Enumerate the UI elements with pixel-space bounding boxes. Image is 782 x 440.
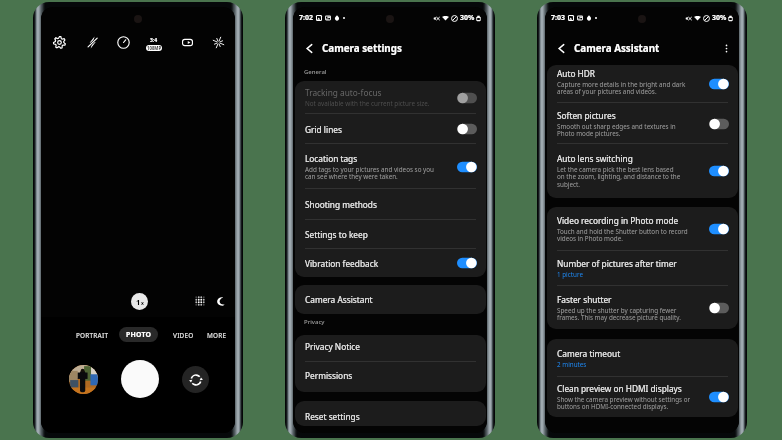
button[interactable]: More options [718, 40, 735, 57]
button[interactable]: Permissions [295, 362, 486, 392]
staticText: 1 [136, 297, 141, 307]
button[interactable]: Filters [212, 36, 225, 49]
button[interactable]: Enabled [709, 223, 729, 235]
staticText: 1 picture [557, 270, 583, 279]
button[interactable]: Vibration feedback [295, 249, 486, 277]
button[interactable]: PHOTO [119, 327, 158, 342]
button[interactable]: Auto lens switching [547, 144, 738, 198]
button[interactable]: Take picture [121, 360, 159, 398]
button[interactable]: Flash off [86, 36, 99, 49]
button[interactable]: Aspect ratio 3 to 4, 108 megapixels [144, 36, 164, 52]
button[interactable]: Tracking auto-focus [295, 81, 486, 114]
button[interactable]: Soften pictures [547, 103, 738, 144]
button[interactable]: Disabled [457, 123, 477, 135]
button[interactable]: Switch camera [182, 366, 209, 393]
staticText: Capture more details in the bright and d… [557, 80, 686, 96]
button[interactable]: Reset settings [295, 401, 486, 426]
button[interactable]: Navigate up [553, 40, 570, 57]
staticText: 2 minutes [557, 360, 587, 369]
staticText: Number of pictures after timer [557, 258, 677, 269]
staticText: 30% [712, 13, 727, 23]
staticText: Touch and hold the Shutter button to rec… [557, 227, 688, 243]
staticText: 30% [460, 13, 475, 23]
button[interactable]: Timer [117, 36, 130, 49]
staticText: Settings to keep [305, 229, 368, 240]
button[interactable]: Video recording in Photo mode [547, 207, 738, 251]
button[interactable]: Grid lines [295, 114, 486, 144]
staticText: Location tags [305, 153, 358, 164]
staticText: Clean preview on HDMI displays [557, 383, 682, 394]
button[interactable]: Enabled [709, 391, 729, 403]
button[interactable]: Disabled [457, 92, 477, 104]
button[interactable]: Camera settings [53, 36, 66, 49]
button[interactable]: Navigate up [301, 40, 318, 57]
button[interactable]: Enabled [457, 161, 477, 173]
staticText: Permissions [305, 370, 353, 381]
button[interactable]: Settings to keep [295, 220, 486, 249]
button[interactable]: Shooting methods [295, 189, 486, 220]
button[interactable]: Number of pictures after timer [547, 251, 738, 286]
button[interactable]: Auto HDR [547, 65, 738, 103]
staticText: 3:4 [150, 37, 158, 44]
button[interactable]: Motion photo [181, 36, 194, 49]
staticText: x [141, 300, 144, 307]
staticText: MORE [207, 331, 227, 340]
staticText: Add tags to your pictures and videos so … [305, 165, 434, 181]
button[interactable]: Enabled [709, 165, 729, 177]
staticText: Speed up the shutter by capturing fewer … [557, 306, 681, 322]
button[interactable]: Night mode [215, 296, 225, 306]
staticText: Shooting methods [305, 199, 377, 210]
button[interactable]: Clean preview on HDMI displays [547, 377, 738, 417]
staticText: Video recording in Photo mode [557, 215, 679, 226]
staticText: Camera Assistant [305, 294, 373, 305]
button[interactable]: Scene optimizer [195, 296, 205, 306]
button[interactable]: Camera Assistant [295, 285, 486, 314]
staticText: Let the camera pick the best lens based … [557, 165, 681, 189]
staticText: General [304, 68, 327, 76]
staticText: 7:02 [299, 13, 313, 23]
button[interactable]: Zoom 1x [131, 293, 148, 310]
staticText: Auto HDR [557, 68, 595, 79]
staticText: Grid lines [305, 124, 342, 135]
staticText: Faster shutter [557, 294, 612, 305]
staticText: Reset settings [305, 411, 360, 422]
staticText: Auto lens switching [557, 153, 633, 164]
button[interactable]: Enabled [709, 78, 729, 90]
button[interactable]: Faster shutter [547, 286, 738, 329]
button[interactable]: Camera timeout [547, 339, 738, 377]
staticText: Vibration feedback [305, 258, 379, 269]
staticText: Smooth out sharp edges and textures in P… [557, 122, 676, 138]
staticText: 108MP [147, 45, 162, 51]
staticText: Show the camera preview without settings… [557, 395, 691, 411]
staticText: Soften pictures [557, 110, 616, 121]
staticText: Privacy [304, 318, 325, 326]
button[interactable]: Disabled [709, 302, 729, 314]
staticText: VIDEO [173, 331, 194, 340]
staticText: Camera Assistant [574, 42, 660, 55]
button[interactable]: Disabled [709, 118, 729, 130]
staticText: Privacy Notice [305, 341, 360, 352]
staticText: Camera settings [322, 42, 402, 55]
button[interactable]: Gallery [69, 365, 98, 394]
staticText: PORTRAIT [76, 331, 109, 340]
button[interactable]: Enabled [457, 257, 477, 269]
button[interactable]: Privacy Notice [295, 335, 486, 362]
staticText: Camera timeout [557, 348, 621, 359]
button[interactable]: Location tags [295, 144, 486, 189]
staticText: Tracking auto-focus [305, 87, 382, 98]
staticText: 7:03 [551, 13, 565, 23]
staticText: Not available with the current picture s… [305, 99, 430, 108]
staticText: PHOTO [126, 330, 152, 339]
